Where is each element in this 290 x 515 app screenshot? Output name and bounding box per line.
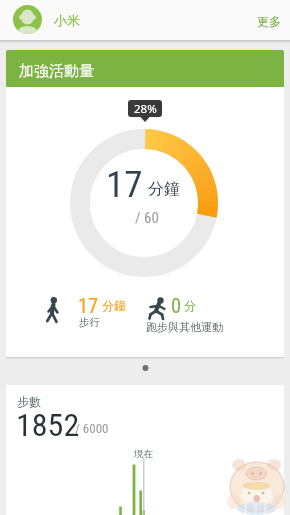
button[interactable] [6,385,284,515]
staticText: 現在 [134,448,153,460]
staticText: 步數 [17,394,41,409]
staticText: 分鐘 [102,298,126,313]
staticText: 步行 [79,316,100,329]
staticText: 加強活動量 [19,62,94,81]
staticText: 小米 [54,12,80,28]
button[interactable]: 加強活動量 [6,50,284,87]
staticText: 17 [106,163,143,206]
staticText: 更多 [257,14,281,29]
button[interactable] [13,5,42,34]
staticText: 跑步與其他運動 [146,320,223,334]
button[interactable]: 更多 [249,8,285,32]
staticText: 17 [78,294,99,318]
staticText: 0 [171,294,182,318]
staticText: 分鐘 [148,179,180,199]
staticText: 28% [134,101,157,117]
staticText: 1852 [16,406,80,444]
staticText: / 60 [135,209,159,227]
staticText: / 6000 [75,421,109,436]
staticText: 分 [184,298,196,313]
